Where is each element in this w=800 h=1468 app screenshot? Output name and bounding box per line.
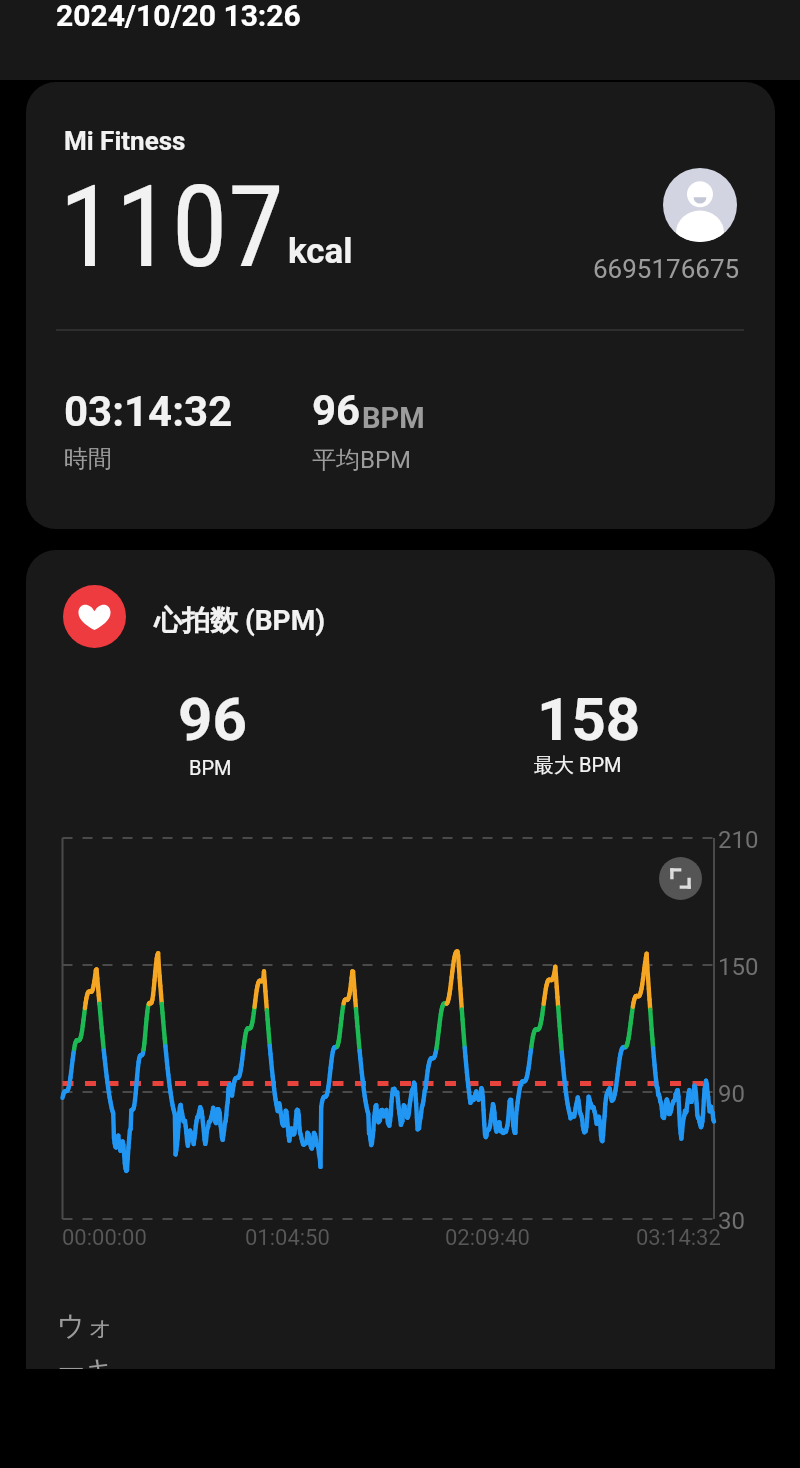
staticText: BPM [362, 401, 425, 435]
button[interactable]: Mi Fitness [26, 82, 775, 529]
staticText: 最大 BPM [534, 753, 622, 778]
staticText: 96 [178, 684, 247, 754]
staticText: Mi Fitness [64, 126, 186, 156]
staticText: 96 [312, 386, 361, 435]
staticText: 158 [537, 684, 641, 754]
staticText: 210 [718, 826, 759, 854]
staticText: 心拍数 (BPM) [154, 603, 326, 638]
staticText: 平均BPM [312, 445, 412, 475]
staticText: ウォーキング [57, 1308, 119, 1433]
staticText: 02:09:40 [445, 1225, 530, 1251]
staticText: 2024/10/20 13:26 [56, 0, 301, 33]
button[interactable]: Fullscreen [659, 857, 702, 900]
staticText: BPM [189, 756, 232, 779]
staticText: 00:00:00 [62, 1225, 147, 1251]
staticText: 01:04:50 [245, 1225, 330, 1251]
staticText: 6695176675 [593, 254, 740, 284]
button[interactable]: Profile [663, 168, 737, 242]
staticText: 150 [718, 953, 759, 981]
staticText: 90 [718, 1080, 745, 1108]
button[interactable]: 心拍数 (BPM) [26, 550, 775, 1450]
staticText: 03:14:32 [64, 387, 233, 436]
staticText: kcal [288, 231, 353, 272]
staticText: 時間 [64, 444, 112, 474]
staticText: 03:14:32 [636, 1225, 721, 1251]
staticText: 30 [718, 1207, 745, 1235]
staticText: 1107 [59, 160, 285, 294]
